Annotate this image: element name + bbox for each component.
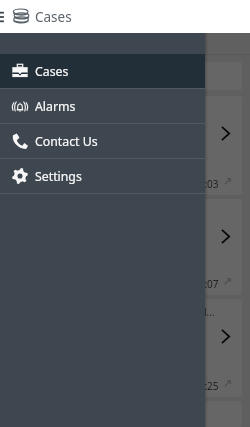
- button[interactable]: 08:11: [8, 401, 242, 427]
- button[interactable]: Contact Us: [0, 124, 205, 158]
- button[interactable]: l...: [8, 299, 242, 397]
- staticText: 12:03: [193, 177, 219, 191]
- staticText: Alarms: [35, 98, 76, 115]
- button[interactable]: [8, 62, 242, 90]
- staticText: 15:25: [193, 379, 219, 393]
- staticText: Settings: [35, 168, 82, 185]
- button[interactable]: Cases: [0, 54, 205, 88]
- staticText: 09:07: [193, 277, 219, 291]
- button[interactable]: Open navigation drawer: [0, 3, 8, 31]
- staticText: Contact Us: [35, 133, 98, 150]
- staticText: Cases: [35, 8, 72, 26]
- staticText: l...: [204, 305, 215, 319]
- button[interactable]: 12:03: [8, 96, 242, 195]
- button[interactable]: 09:07: [8, 199, 242, 295]
- button[interactable]: Settings: [0, 159, 205, 193]
- staticText: Cases: [35, 63, 69, 80]
- button[interactable]: Alarms: [0, 89, 205, 123]
